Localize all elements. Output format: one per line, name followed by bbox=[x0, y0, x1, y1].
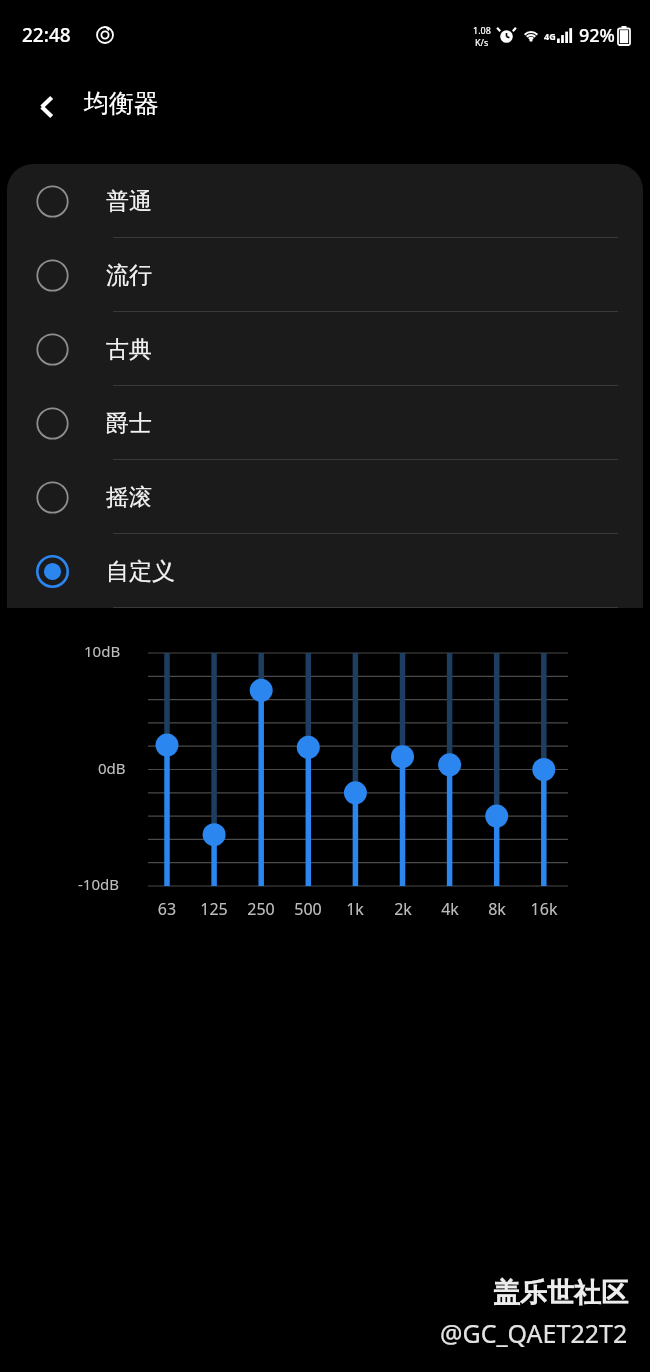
button[interactable]: 流行 bbox=[7, 238, 643, 312]
staticText: 古典 bbox=[106, 335, 152, 364]
staticText: 流行 bbox=[106, 261, 152, 290]
staticText: 8k bbox=[472, 898, 522, 920]
staticText: 63 bbox=[142, 898, 192, 920]
staticText: 4k bbox=[425, 898, 475, 920]
staticText: 10dB bbox=[84, 641, 121, 661]
staticText: @GC_QAET22T2 bbox=[440, 1316, 628, 1350]
button[interactable]: 古典 bbox=[7, 312, 643, 386]
staticText: 4G bbox=[544, 30, 556, 42]
staticText: 2k bbox=[378, 898, 428, 920]
staticText: 250 bbox=[236, 898, 286, 920]
button[interactable]: Back bbox=[18, 78, 76, 136]
staticText: 均衡器 bbox=[84, 88, 159, 119]
staticText: -10dB bbox=[78, 874, 119, 894]
staticText: K/s bbox=[475, 36, 489, 48]
staticText: 92% bbox=[579, 23, 615, 48]
staticText: 爵士 bbox=[106, 409, 152, 438]
button[interactable]: 摇滚 bbox=[7, 460, 643, 534]
staticText: 摇滚 bbox=[106, 483, 152, 512]
staticText: 16k bbox=[519, 898, 569, 920]
staticText: 1.08 bbox=[473, 24, 491, 36]
staticText: 22:48 bbox=[22, 22, 71, 48]
staticText: 1k bbox=[330, 898, 380, 920]
button[interactable]: 爵士 bbox=[7, 386, 643, 460]
staticText: 普通 bbox=[106, 187, 152, 216]
staticText: 盖乐世社区 bbox=[493, 1276, 628, 1310]
staticText: 125 bbox=[189, 898, 239, 920]
staticText: 500 bbox=[283, 898, 333, 920]
staticText: 0dB bbox=[98, 758, 126, 778]
button[interactable]: 自定义 bbox=[7, 534, 643, 608]
staticText: 自定义 bbox=[106, 557, 175, 586]
button[interactable]: 普通 bbox=[7, 164, 643, 238]
